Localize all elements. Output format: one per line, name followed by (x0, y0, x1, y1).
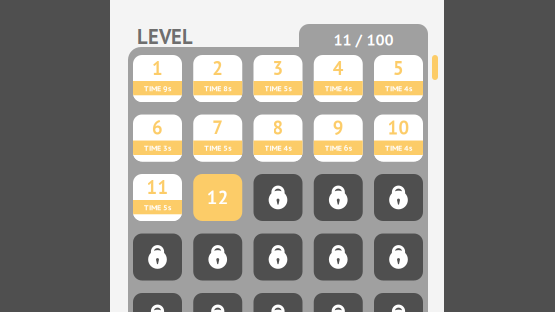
button[interactable]: 11 / 100 (299, 24, 428, 55)
button[interactable]: 3 (253, 55, 302, 102)
button[interactable]: Locked level (314, 174, 363, 221)
button[interactable]: Locked level (133, 233, 182, 280)
button[interactable]: 1 (133, 55, 182, 102)
staticText: 11 (146, 175, 168, 199)
staticText: 9 (333, 115, 344, 140)
staticText: TIME 4s (385, 83, 412, 93)
staticText: 11 / 100 (333, 29, 393, 50)
staticText: TIME 5s (204, 143, 231, 153)
button[interactable]: Locked level (253, 233, 302, 280)
staticText: 8 (272, 115, 283, 140)
button[interactable]: Locked level (253, 174, 302, 221)
button[interactable]: Locked level (374, 293, 423, 312)
button[interactable]: Locked level (253, 293, 302, 312)
staticText: 2 (212, 56, 223, 80)
staticText: 3 (272, 56, 283, 80)
staticText: 10 (387, 115, 409, 140)
button[interactable]: 11 (133, 174, 182, 221)
button[interactable]: Locked level (314, 233, 363, 280)
staticText: TIME 3s (144, 143, 171, 153)
staticText: TIME 4s (264, 143, 291, 153)
staticText: 5 (393, 56, 404, 80)
button[interactable]: 8 (253, 114, 302, 161)
button[interactable]: 6 (133, 114, 182, 161)
button[interactable]: 12 (193, 174, 242, 221)
staticText: TIME 6s (325, 143, 352, 153)
staticText: TIME 8s (204, 83, 231, 93)
staticText: LEVEL (137, 23, 193, 50)
button[interactable]: Locked level (374, 233, 423, 280)
staticText: 4 (333, 56, 344, 80)
staticText: 6 (152, 115, 163, 140)
staticText: TIME 5s (264, 83, 291, 93)
button[interactable]: Locked level (193, 233, 242, 280)
staticText: TIME 4s (325, 83, 352, 93)
button[interactable]: 7 (193, 114, 242, 161)
button[interactable]: 10 (374, 114, 423, 161)
button[interactable]: 9 (314, 114, 363, 161)
staticText: 1 (152, 56, 163, 80)
button[interactable]: 5 (374, 55, 423, 102)
button[interactable]: Locked level (133, 293, 182, 312)
button[interactable]: Locked level (314, 293, 363, 312)
staticText: TIME 4s (385, 143, 412, 153)
button[interactable]: 4 (314, 55, 363, 102)
staticText: TIME 9s (144, 83, 171, 93)
staticText: 7 (212, 115, 223, 140)
button[interactable]: 2 (193, 55, 242, 102)
staticText: 12 (207, 185, 229, 210)
button[interactable]: Locked level (374, 174, 423, 221)
button[interactable]: Locked level (193, 293, 242, 312)
staticText: TIME 5s (144, 202, 171, 212)
